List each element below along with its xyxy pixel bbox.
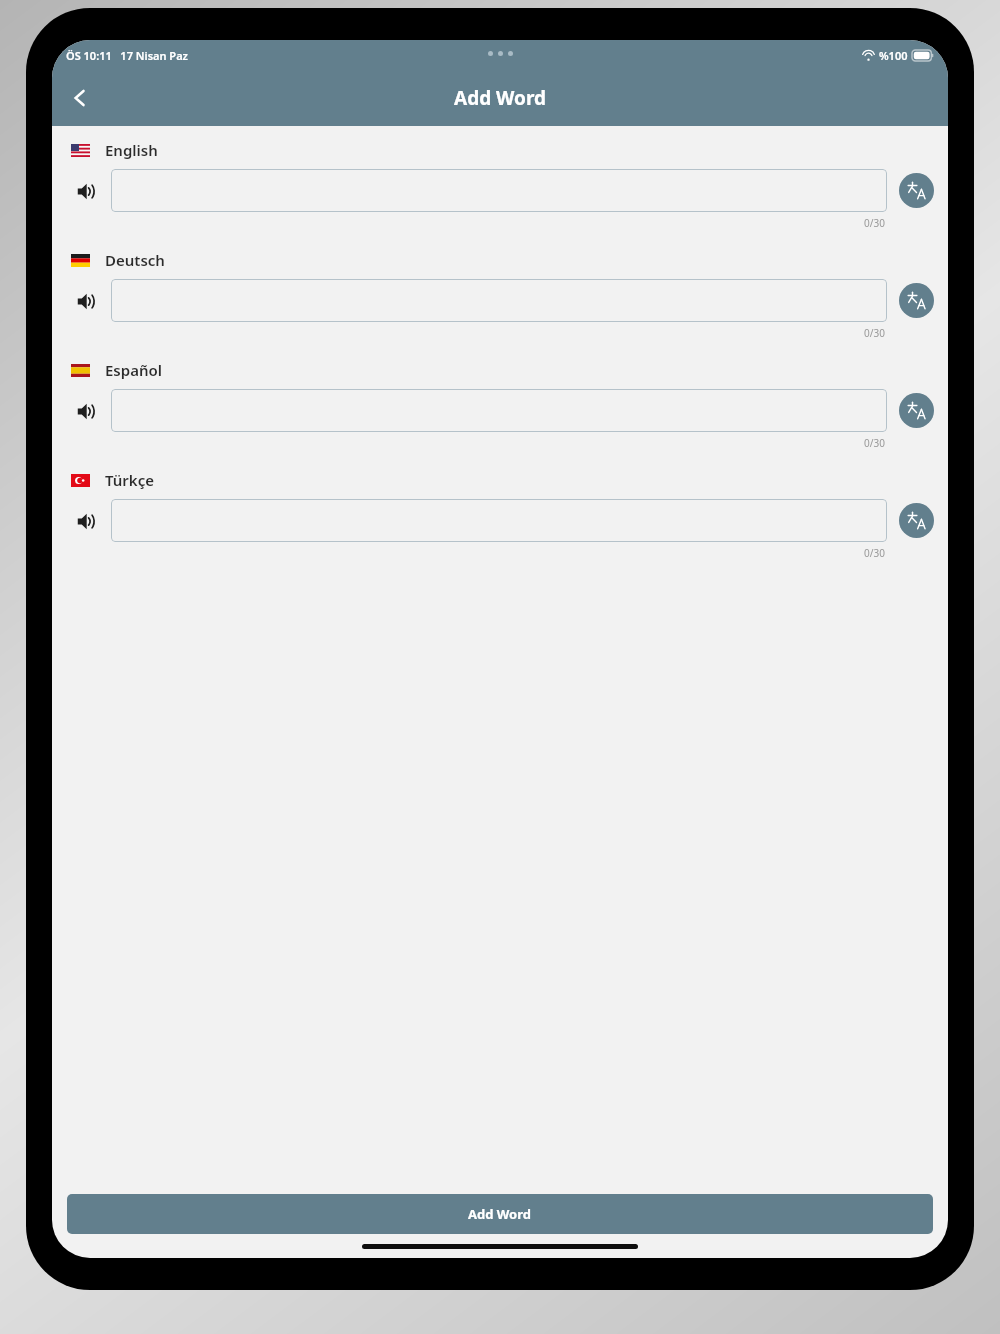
button[interactable]: Play pronunciation English: [66, 171, 106, 211]
button[interactable]: Translate English: [899, 173, 934, 208]
button[interactable]: Translate Deutsch: [899, 283, 934, 318]
button[interactable]: Translate Türkçe: [899, 503, 934, 538]
button[interactable]: Play pronunciation Deutsch: [66, 281, 106, 321]
staticText: %100: [879, 48, 908, 63]
staticText: 0/30: [864, 546, 885, 560]
staticText: 0/30: [864, 436, 885, 450]
staticText: Español: [105, 360, 163, 380]
staticText: Add Word: [454, 85, 547, 111]
button[interactable]: [111, 499, 887, 542]
staticText: English: [105, 140, 158, 160]
button[interactable]: [111, 169, 887, 212]
button[interactable]: [111, 389, 887, 432]
staticText: Add Word: [468, 1205, 532, 1223]
staticText: 0/30: [864, 216, 885, 230]
button[interactable]: Translate Español: [899, 393, 934, 428]
staticText: Türkçe: [105, 470, 154, 490]
button[interactable]: Back: [56, 74, 104, 122]
button[interactable]: Play pronunciation Türkçe: [66, 501, 106, 541]
button[interactable]: [111, 279, 887, 322]
staticText: 0/30: [864, 326, 885, 340]
button[interactable]: Add Word: [67, 1194, 933, 1234]
button[interactable]: Play pronunciation Español: [66, 391, 106, 431]
staticText: Deutsch: [105, 250, 165, 270]
staticText: ÖS 10:11 17 Nisan Paz: [66, 48, 188, 63]
